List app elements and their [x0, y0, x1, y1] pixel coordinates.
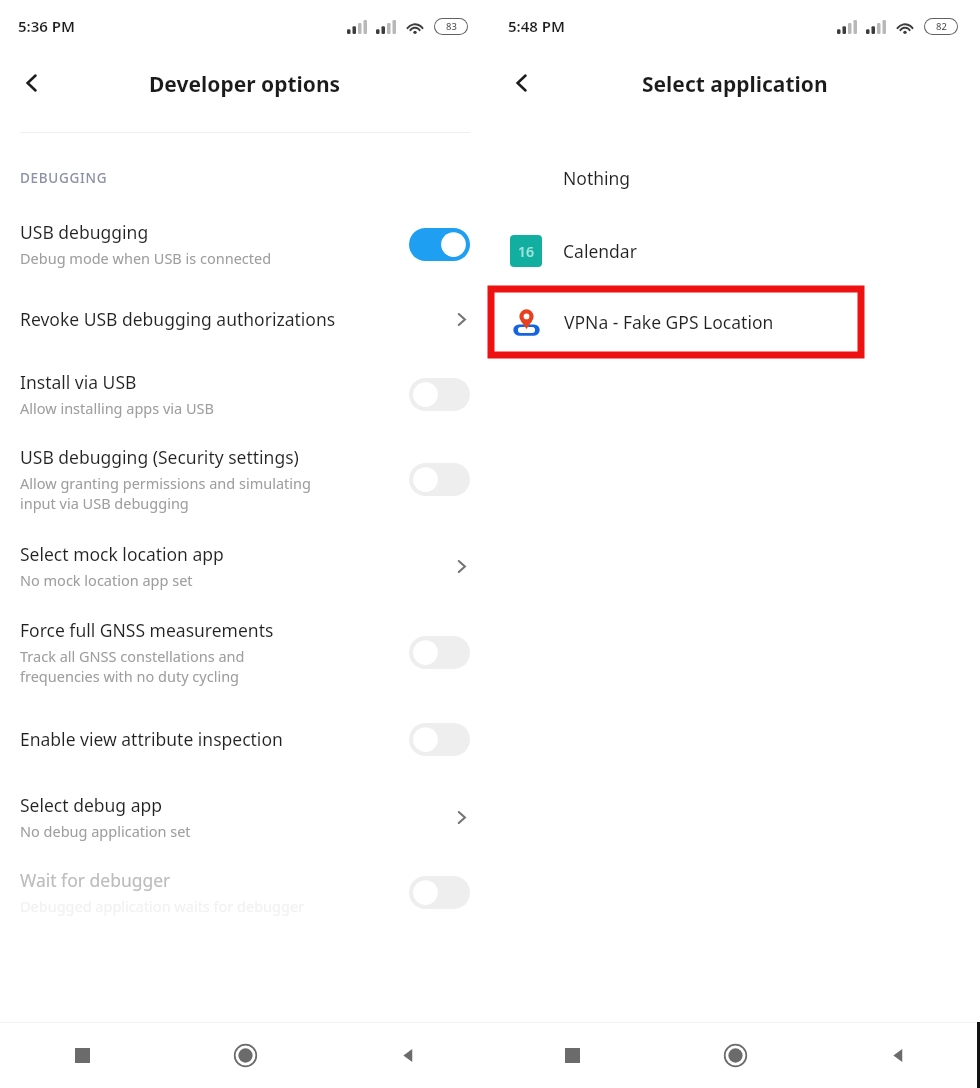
- staticText: Developer options: [149, 70, 341, 99]
- button[interactable]: Force full GNSS measurements: [0, 605, 490, 699]
- staticText: Calendar: [563, 239, 637, 263]
- staticText: 5:36 PM: [18, 16, 75, 36]
- staticText: USB debugging: [20, 220, 149, 244]
- staticText: Select application: [642, 70, 828, 99]
- staticText: Revoke USB debugging authorizations: [20, 307, 336, 331]
- button[interactable]: Back: [6, 57, 58, 109]
- staticText: No debug application set: [20, 821, 191, 841]
- button[interactable]: Enable view attribute inspection: [0, 699, 490, 779]
- button[interactable]: USB debugging (Security settings): [0, 431, 490, 527]
- staticText: Allow installing apps via USB: [20, 398, 214, 418]
- button[interactable]: Select debug app: [0, 779, 490, 855]
- staticText: Allow granting permissions and simulatin…: [20, 473, 311, 513]
- button[interactable]: Install via USB: [0, 357, 490, 431]
- staticText: USB debugging (Security settings): [20, 445, 299, 469]
- staticText: Install via USB: [20, 370, 137, 394]
- staticText: 16: [518, 242, 535, 261]
- staticText: Select mock location app: [20, 542, 224, 566]
- button[interactable]: Back: [327, 1023, 490, 1088]
- button[interactable]: 16: [490, 225, 980, 277]
- button[interactable]: Back: [496, 57, 548, 109]
- staticText: Select debug app: [20, 793, 162, 817]
- button[interactable]: Select mock location app: [0, 527, 490, 605]
- staticText: Debugged application waits for debugger: [20, 896, 305, 916]
- staticText: 82: [936, 20, 947, 33]
- staticText: Wait for debugger: [20, 868, 171, 892]
- staticText: 83: [446, 20, 457, 33]
- staticText: VPNa - Fake GPS Location: [564, 310, 774, 334]
- staticText: No mock location app set: [20, 570, 193, 590]
- staticText: Debug mode when USB is connected: [20, 248, 272, 268]
- button[interactable]: Home: [654, 1023, 817, 1088]
- button[interactable]: Recent apps: [0, 1023, 164, 1088]
- staticText: Track all GNSS constellations and freque…: [20, 646, 245, 686]
- button[interactable]: Recent apps: [490, 1023, 654, 1088]
- staticText: Enable view attribute inspection: [20, 727, 283, 751]
- button[interactable]: Home: [164, 1023, 327, 1088]
- staticText: 5:48 PM: [508, 16, 565, 36]
- staticText: Force full GNSS measurements: [20, 618, 274, 642]
- button[interactable]: Back: [817, 1023, 980, 1088]
- button[interactable]: Wait for debugger: [0, 855, 490, 929]
- staticText: DEBUGGING: [20, 169, 108, 187]
- button[interactable]: Nothing: [490, 152, 980, 204]
- staticText: Nothing: [563, 166, 631, 190]
- button[interactable]: USB debugging: [0, 207, 490, 281]
- button[interactable]: Revoke USB debugging authorizations: [0, 281, 490, 357]
- button[interactable]: VPNa - Fake GPS Location: [491, 289, 861, 355]
